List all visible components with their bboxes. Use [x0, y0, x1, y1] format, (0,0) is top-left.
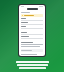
button[interactable] — [21, 49, 43, 52]
other: Caption text — [19, 67, 46, 69]
other: Caption text — [17, 64, 48, 66]
button[interactable] — [21, 14, 43, 17]
other: Caption text — [16, 61, 49, 63]
button[interactable] — [19, 5, 45, 56]
